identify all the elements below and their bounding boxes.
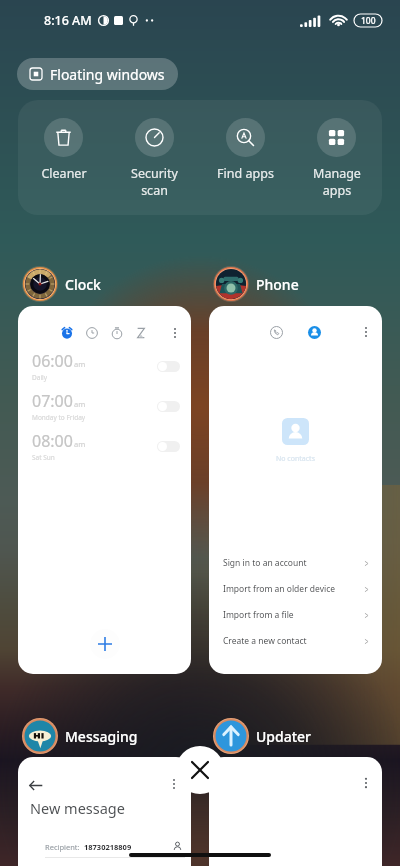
button[interactable]: Back bbox=[18, 757, 191, 866]
staticText: Updater bbox=[256, 727, 312, 746]
button[interactable]: Manage apps bbox=[291, 118, 382, 198]
staticText: am bbox=[74, 399, 86, 409]
button[interactable]: More options bbox=[360, 326, 372, 338]
staticText: 8:16 AM bbox=[44, 12, 92, 29]
button[interactable]: Alarm bbox=[61, 327, 73, 339]
staticText: Floating windows bbox=[50, 65, 165, 84]
staticText: Create a new contact bbox=[223, 635, 307, 647]
button[interactable]: World clock bbox=[86, 327, 98, 339]
staticText: Messaging bbox=[65, 727, 138, 746]
staticText: Monday to Friday bbox=[32, 413, 86, 422]
button[interactable]: 07:00 bbox=[18, 386, 191, 426]
staticText: 100 bbox=[361, 15, 376, 27]
button[interactable]: Back bbox=[27, 777, 44, 794]
button[interactable]: Toggle alarm bbox=[157, 401, 180, 412]
staticText: Sat Sun bbox=[32, 453, 55, 462]
staticText: Recipient: bbox=[45, 842, 80, 852]
button[interactable]: Find apps bbox=[200, 118, 291, 182]
button[interactable]: Contacts bbox=[308, 326, 321, 339]
button[interactable]: 08:00 bbox=[18, 426, 191, 466]
button[interactable]: 06:00 bbox=[18, 346, 191, 386]
button[interactable]: Add alarm bbox=[90, 629, 120, 659]
button[interactable]: Clock bbox=[22, 266, 101, 302]
staticText: Find apps bbox=[217, 165, 274, 182]
button[interactable]: Toggle alarm bbox=[157, 361, 180, 372]
button[interactable]: More options bbox=[168, 778, 180, 790]
button[interactable]: Import from an older device bbox=[209, 576, 382, 602]
button[interactable]: Phone bbox=[213, 266, 299, 302]
staticText: 07:00 bbox=[32, 390, 73, 412]
button[interactable]: Create a new contact bbox=[209, 628, 382, 654]
button[interactable]: Sign in to an account bbox=[209, 550, 382, 576]
button[interactable]: Alarm bbox=[18, 306, 191, 674]
staticText: 06:00 bbox=[32, 350, 73, 372]
button[interactable]: Floating windows bbox=[17, 58, 178, 90]
staticText: 18730218809 bbox=[84, 842, 132, 852]
button[interactable]: Stopwatch bbox=[111, 327, 123, 339]
staticText: Import from an older device bbox=[223, 583, 336, 595]
button[interactable]: Timer bbox=[135, 327, 147, 339]
button[interactable]: Close all bbox=[176, 746, 224, 794]
staticText: Sign in to an account bbox=[223, 557, 307, 569]
staticText: Cleaner bbox=[41, 165, 87, 182]
staticText: Manage apps bbox=[313, 165, 361, 198]
staticText: Clock bbox=[65, 275, 101, 294]
button[interactable]: Dialer bbox=[270, 326, 283, 339]
staticText: No contacts bbox=[276, 454, 315, 464]
staticText: Import from a file bbox=[223, 609, 294, 621]
staticText: am bbox=[74, 359, 86, 369]
button[interactable]: Dialer bbox=[209, 306, 382, 674]
staticText: Security scan bbox=[131, 165, 178, 198]
button[interactable]: More options bbox=[169, 327, 181, 339]
button[interactable]: Updater bbox=[213, 718, 312, 754]
staticText: Phone bbox=[256, 275, 299, 294]
button[interactable]: Toggle alarm bbox=[157, 441, 180, 452]
staticText: Daily bbox=[32, 373, 48, 382]
staticText: 08:00 bbox=[32, 430, 73, 452]
staticText: am bbox=[74, 439, 86, 449]
button[interactable]: Import from a file bbox=[209, 602, 382, 628]
button[interactable]: Cleaner bbox=[18, 118, 109, 182]
button[interactable]: Messaging bbox=[22, 718, 138, 754]
staticText: New message bbox=[30, 798, 125, 818]
button[interactable]: Security scan bbox=[109, 118, 200, 198]
button[interactable] bbox=[209, 757, 382, 866]
